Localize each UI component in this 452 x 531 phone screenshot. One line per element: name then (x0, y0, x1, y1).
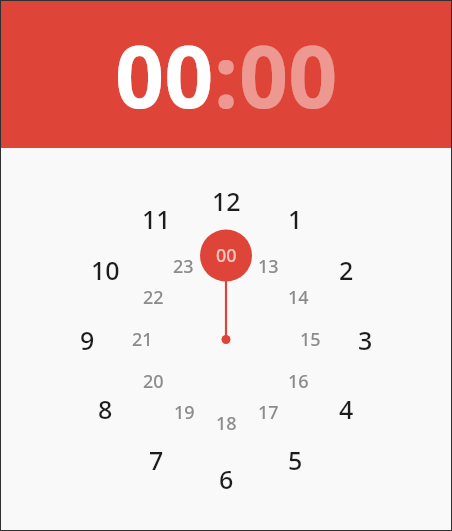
staticText: 16 (288, 369, 309, 394)
staticText: 00 (239, 16, 338, 133)
button[interactable]: 21 (132, 327, 153, 352)
staticText: 1 (288, 202, 303, 236)
button[interactable]: 7 (149, 443, 164, 477)
staticText: 4 (339, 392, 354, 426)
button[interactable]: 23 (173, 254, 194, 279)
staticText: 8 (98, 392, 113, 426)
button[interactable]: 19 (174, 400, 195, 425)
staticText: 18 (216, 411, 237, 436)
staticText: 11 (142, 202, 171, 236)
staticText: 00 (216, 243, 237, 268)
button[interactable]: 00 (216, 243, 237, 268)
staticText: 17 (258, 400, 279, 425)
staticText: 10 (91, 253, 120, 287)
staticText: 7 (149, 443, 164, 477)
staticText: 20 (143, 369, 164, 394)
button[interactable]: 16 (288, 369, 309, 394)
staticText: 13 (258, 254, 279, 279)
button[interactable]: 5 (288, 443, 303, 477)
button[interactable]: 6 (219, 462, 234, 496)
staticText: 3 (358, 323, 373, 357)
button[interactable]: 18 (216, 411, 237, 436)
staticText: 21 (132, 327, 153, 352)
staticText: 5 (288, 443, 303, 477)
button[interactable]: 4 (339, 392, 354, 426)
staticText: 2 (339, 253, 354, 287)
button[interactable]: 12 (212, 184, 241, 218)
staticText: 14 (288, 285, 309, 310)
button[interactable]: 17 (258, 400, 279, 425)
staticText: 15 (300, 327, 321, 352)
button[interactable]: 8 (98, 392, 113, 426)
button[interactable]: 10 (91, 253, 120, 287)
button[interactable]: 14 (288, 285, 309, 310)
staticText: 22 (143, 285, 164, 310)
staticText: 9 (80, 323, 95, 357)
button[interactable]: 00 (239, 16, 338, 133)
button[interactable]: 20 (143, 369, 164, 394)
button[interactable]: 11 (142, 202, 171, 236)
button[interactable]: 3 (358, 323, 373, 357)
button[interactable]: 22 (143, 285, 164, 310)
button[interactable]: 13 (258, 254, 279, 279)
staticText: 00 (115, 16, 214, 133)
staticText: 6 (219, 462, 234, 496)
staticText: 19 (174, 400, 195, 425)
button[interactable]: 24 hour clock dial (0, 148, 452, 531)
staticText: : (214, 16, 239, 133)
button[interactable]: 9 (80, 323, 95, 357)
staticText: 12 (212, 184, 241, 218)
staticText: 23 (173, 254, 194, 279)
button[interactable]: 00 (115, 16, 214, 133)
button[interactable]: 1 (288, 202, 303, 236)
button[interactable]: 2 (339, 253, 354, 287)
button[interactable]: 15 (300, 327, 321, 352)
